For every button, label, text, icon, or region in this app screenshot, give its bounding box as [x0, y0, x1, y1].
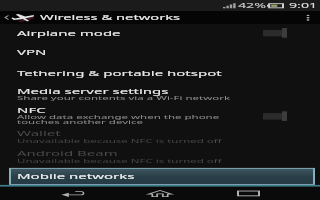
staticText: touches another device	[17, 118, 143, 126]
staticText: Android Beam	[17, 149, 118, 158]
staticText: Airplane mode	[17, 28, 121, 38]
staticText: NFC	[17, 106, 46, 115]
button[interactable]: More options	[296, 11, 320, 24]
button[interactable]: NFC	[0, 104, 320, 128]
staticText: Media server settings	[17, 86, 169, 96]
staticText: Unavailable because NFC is turned off	[17, 137, 222, 144]
button[interactable]: VPN	[0, 42, 320, 62]
staticText: Wallet	[17, 128, 61, 137]
staticText: Wireless & networks	[40, 13, 181, 22]
button[interactable]: Home	[116, 187, 204, 200]
button[interactable]: Mobile networks	[11, 169, 313, 184]
staticText: VPN	[17, 48, 47, 57]
button[interactable]: Recent apps	[204, 187, 292, 200]
staticText: 42%	[238, 1, 267, 10]
button[interactable]: Tethering & portable hotspot	[0, 63, 320, 83]
button[interactable]: Media server settings	[0, 83, 320, 102]
staticText: Unavailable because NFC is turned off	[17, 157, 222, 165]
button[interactable]: Android Beam	[0, 147, 320, 166]
staticText: Tethering & portable hotspot	[17, 68, 222, 78]
staticText: 9:01	[289, 1, 318, 10]
button[interactable]: Airplane mode	[0, 24, 320, 42]
button[interactable]: Back	[28, 187, 116, 200]
staticText: Mobile networks	[17, 172, 135, 181]
staticText: Share your contents via a Wi-Fi network	[17, 95, 231, 102]
button[interactable]: Navigate up	[0, 11, 34, 24]
staticText: Allow data exchange when the phone	[17, 114, 220, 121]
button[interactable]: Wallet	[0, 126, 320, 145]
